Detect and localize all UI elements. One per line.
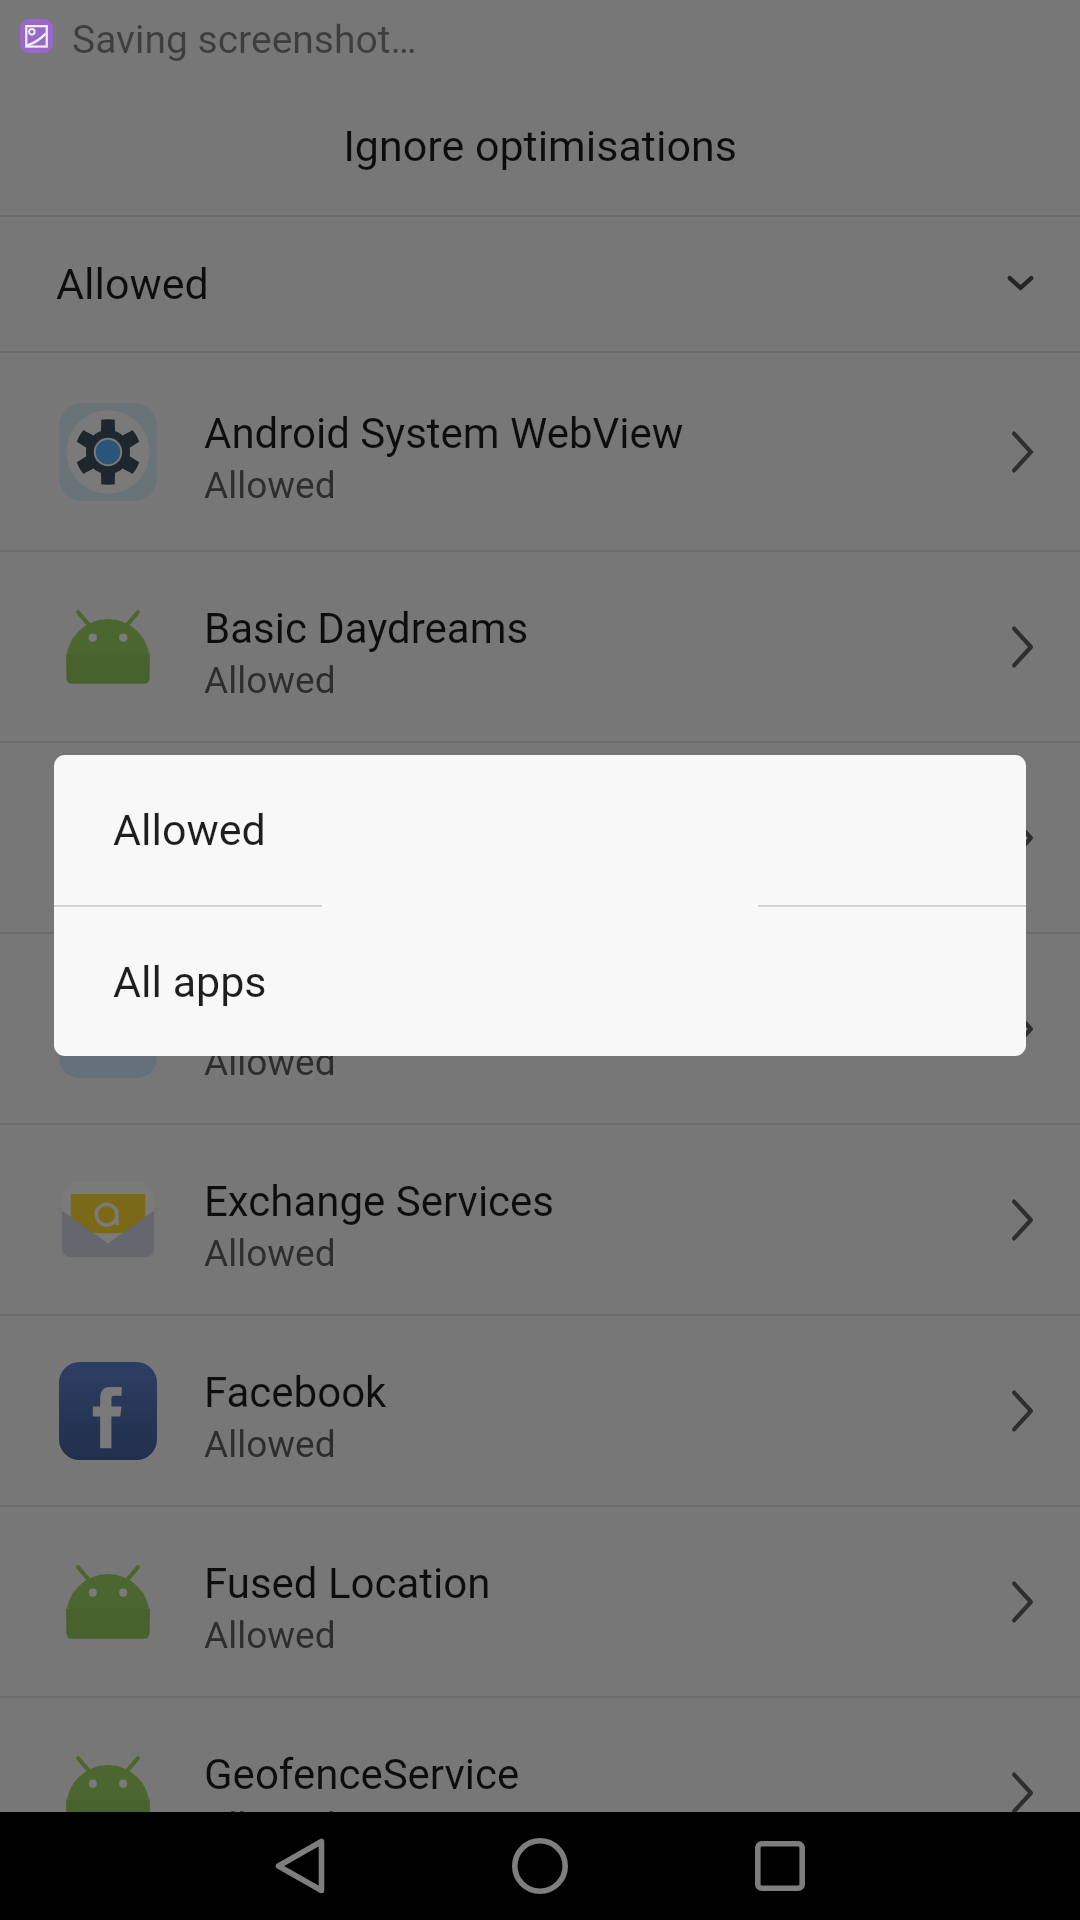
staticText: Allowed xyxy=(204,1805,336,1849)
staticText: Allowed xyxy=(113,805,266,855)
staticText: Saving screenshot… xyxy=(72,17,417,63)
staticText: Allowed xyxy=(204,1232,336,1276)
button[interactable]: Allowed xyxy=(0,217,1080,351)
staticText: All apps xyxy=(113,957,267,1007)
button[interactable]: Android System WebView xyxy=(0,353,1080,550)
button[interactable]: Facebook xyxy=(0,1316,1080,1505)
staticText: Allowed xyxy=(204,1614,336,1658)
staticText: Fused Location xyxy=(204,1559,491,1614)
staticText: Allowed xyxy=(56,259,209,309)
staticText: Allowed xyxy=(204,659,336,703)
button[interactable]: Bluetooth Share xyxy=(0,743,1080,932)
staticText: Ignore optimisations xyxy=(343,121,737,171)
button[interactable]: GeofenceService xyxy=(0,1698,1080,1887)
staticText: GeofenceService xyxy=(204,1750,520,1805)
staticText: Calendar Storage xyxy=(204,986,526,1041)
staticText: Allowed xyxy=(204,1041,336,1085)
staticText: Facebook xyxy=(204,1368,387,1423)
button[interactable]: Back xyxy=(240,1812,360,1920)
button[interactable]: Basic Daydreams xyxy=(0,552,1080,741)
button[interactable]: Allowed xyxy=(54,755,1026,905)
button[interactable]: All apps xyxy=(54,907,1026,1056)
button[interactable]: Recent apps xyxy=(720,1812,840,1920)
staticText: Android System WebView xyxy=(204,409,684,464)
button[interactable]: Calendar Storage xyxy=(0,934,1080,1123)
button[interactable]: Fused Location xyxy=(0,1507,1080,1696)
staticText: Bluetooth Share xyxy=(204,795,502,850)
button[interactable]: Home xyxy=(480,1812,600,1920)
staticText: Allowed xyxy=(204,464,336,508)
button[interactable]: Exchange Services xyxy=(0,1125,1080,1314)
staticText: Allowed xyxy=(204,1423,336,1467)
staticText: Exchange Services xyxy=(204,1177,555,1232)
staticText: Basic Daydreams xyxy=(204,604,529,659)
